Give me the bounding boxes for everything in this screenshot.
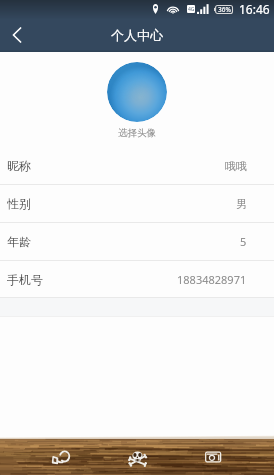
staticText: 个人中心 xyxy=(111,27,163,43)
button[interactable]: 年龄 xyxy=(0,223,274,261)
staticText: 哦哦 xyxy=(225,159,247,173)
staticText: 5 xyxy=(240,234,247,249)
staticText: 16:46 xyxy=(239,1,270,17)
button[interactable]: 性别 xyxy=(0,185,274,223)
staticText: 男 xyxy=(236,197,247,211)
staticText: 手机号 xyxy=(7,272,43,287)
staticText: 18834828971 xyxy=(177,272,247,287)
button[interactable]: Back xyxy=(0,18,33,52)
staticText: 昵称 xyxy=(7,158,31,173)
staticText: 性别 xyxy=(7,196,31,211)
staticText: 4G xyxy=(188,6,195,13)
staticText: 36% xyxy=(218,5,231,14)
button[interactable]: 昵称 xyxy=(0,147,274,185)
button[interactable]: 选择头像 xyxy=(107,62,167,122)
button[interactable]: Skull xyxy=(99,439,175,475)
button[interactable]: Hook xyxy=(23,439,99,475)
button[interactable]: Camera xyxy=(175,439,251,475)
staticText: 年龄 xyxy=(7,234,31,249)
button[interactable]: 手机号 xyxy=(0,261,274,298)
staticText: 选择头像 xyxy=(118,127,156,139)
